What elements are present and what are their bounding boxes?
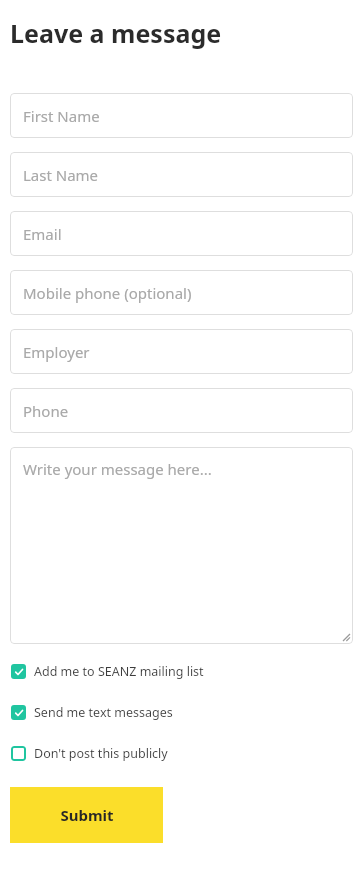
staticText: Mobile phone (optional) xyxy=(23,283,192,303)
button[interactable]: Write your message here... xyxy=(10,447,353,644)
button[interactable]: Submit xyxy=(10,787,163,843)
staticText: Add me to SEANZ mailing list xyxy=(34,663,204,680)
staticText: Don't post this publicly xyxy=(34,745,168,762)
button[interactable]: Add me to SEANZ mailing list xyxy=(0,660,363,683)
button[interactable]: Mobile phone (optional) xyxy=(10,270,353,315)
staticText: Last Name xyxy=(23,165,99,185)
button[interactable]: Don't post this publicly xyxy=(0,742,363,765)
button[interactable]: Email xyxy=(10,211,353,256)
button[interactable]: Send me text messages xyxy=(0,701,363,724)
staticText: Phone xyxy=(23,401,69,421)
staticText: Employer xyxy=(23,342,90,362)
staticText: Leave a message xyxy=(10,16,222,50)
button[interactable]: First Name xyxy=(10,93,353,138)
button[interactable]: Phone xyxy=(10,388,353,433)
staticText: Write your message here... xyxy=(23,459,212,479)
staticText: Email xyxy=(23,224,62,244)
staticText: Send me text messages xyxy=(34,704,173,721)
button[interactable]: Last Name xyxy=(10,152,353,197)
staticText: Submit xyxy=(60,805,114,825)
button[interactable]: Employer xyxy=(10,329,353,374)
staticText: First Name xyxy=(23,106,100,126)
